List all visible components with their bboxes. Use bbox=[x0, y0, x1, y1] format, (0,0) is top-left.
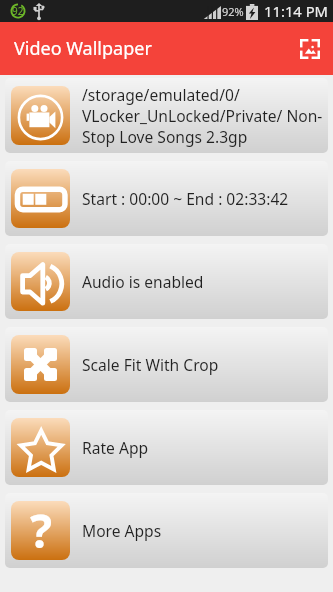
button[interactable]: Audio is enabled bbox=[5, 244, 328, 319]
staticText: Video Wallpaper bbox=[14, 36, 152, 61]
button[interactable]: Start : 00:00 ~ End : 02:33:42 bbox=[5, 161, 328, 236]
button[interactable]: Set as wallpaper bbox=[288, 27, 332, 71]
staticText: Audio is enabled bbox=[82, 271, 204, 292]
staticText: 92 bbox=[12, 4, 24, 18]
staticText: Scale Fit With Crop bbox=[82, 354, 219, 375]
staticText: More Apps bbox=[82, 520, 162, 541]
button[interactable]: Rate App bbox=[5, 410, 328, 485]
staticText: VLocker_UnLocked/Private/ Non- bbox=[82, 105, 323, 126]
staticText: Stop Love Songs 2.3gp bbox=[82, 126, 248, 147]
staticText: Start : 00:00 ~ End : 02:33:42 bbox=[82, 188, 289, 209]
staticText: ? bbox=[30, 501, 52, 558]
staticText: 92% bbox=[222, 4, 244, 19]
staticText: /storage/emulated/0/ bbox=[82, 84, 240, 105]
staticText: 11:14 PM bbox=[264, 1, 329, 21]
button[interactable]: Scale Fit With Crop bbox=[5, 327, 328, 402]
staticText: Rate App bbox=[82, 437, 149, 458]
button[interactable]: /storage/emulated/0/ bbox=[5, 78, 328, 153]
button[interactable]: ? bbox=[5, 493, 328, 568]
